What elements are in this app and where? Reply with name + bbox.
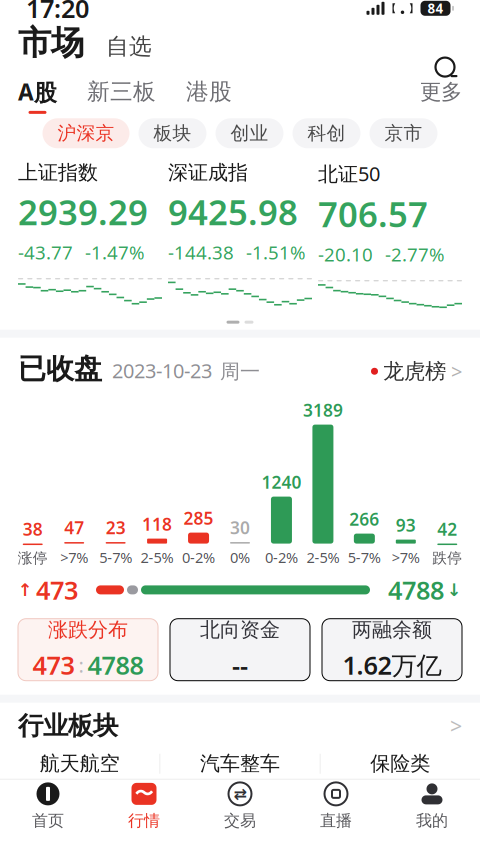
staticText: 5-7% <box>348 548 381 567</box>
button[interactable]: 创业 <box>215 118 283 148</box>
button[interactable]: 北证50 <box>318 160 462 315</box>
staticText: 2-5% <box>141 548 174 567</box>
staticText: 沪深京 <box>57 122 114 145</box>
button[interactable]: 直播 <box>288 780 384 832</box>
staticText: 30 <box>230 516 250 539</box>
button[interactable]: 搜索 <box>432 54 462 84</box>
button[interactable]: 港股 <box>156 78 232 113</box>
staticText: -1.47% <box>85 240 145 265</box>
button[interactable]: 京市 <box>369 118 437 148</box>
staticText: 4788 <box>87 648 143 682</box>
staticText: 5-7% <box>99 548 132 567</box>
staticText: -43.77 <box>18 240 73 265</box>
staticText: 2939.29 <box>18 189 148 235</box>
staticText: 0-2% <box>265 548 298 567</box>
staticText: 直播 <box>320 811 352 831</box>
button[interactable]: 新三板 <box>57 78 156 113</box>
staticText: 京市 <box>384 122 422 145</box>
staticText: ⇄ <box>233 785 246 803</box>
staticText: 跌停 <box>432 549 462 567</box>
button[interactable]: ⇄ <box>192 780 288 832</box>
button[interactable]: 龙虎榜 <box>371 358 462 385</box>
staticText: 706.57 <box>318 191 428 237</box>
button[interactable]: 深证成指 <box>168 160 312 313</box>
staticText: 市场 <box>18 22 84 63</box>
button[interactable]: 汽车整车 <box>160 751 320 776</box>
button[interactable]: 沪深京 <box>42 118 129 148</box>
staticText: >7% <box>60 548 88 567</box>
staticText: 已收盘 <box>18 352 102 386</box>
staticText: 2-5% <box>306 548 339 567</box>
button[interactable]: 北向资金 <box>170 619 310 681</box>
button[interactable]: 自选 <box>84 33 152 60</box>
button[interactable]: 首页 <box>0 780 96 832</box>
staticText: 473 <box>32 648 74 682</box>
staticText: 47 <box>64 516 84 539</box>
staticText: 两融余额 <box>352 618 432 642</box>
staticText: 科创 <box>307 122 345 145</box>
staticText: 0% <box>230 548 250 567</box>
staticText: 行业板块 <box>18 710 118 741</box>
staticText: 更多 <box>420 79 462 105</box>
staticText: 266 <box>349 508 379 531</box>
staticText: 93 <box>396 514 416 537</box>
staticText: > <box>450 711 462 740</box>
staticText: 汽车整车 <box>200 751 280 776</box>
button[interactable]: 航天航空 <box>0 751 159 776</box>
staticText: 17:20 <box>26 0 89 25</box>
staticText: -2.77% <box>385 242 445 267</box>
staticText: 我的 <box>416 811 448 831</box>
button[interactable]: 两融余额 <box>322 619 462 681</box>
staticText: 9425.98 <box>168 189 298 235</box>
staticText: -144.38 <box>168 240 234 265</box>
button[interactable]: 保险类 <box>321 751 480 776</box>
staticText: 42 <box>437 517 457 540</box>
staticText: 新三板 <box>87 78 156 106</box>
staticText: 473 <box>36 573 78 607</box>
staticText: 首页 <box>32 811 64 831</box>
staticText: 港股 <box>186 78 232 106</box>
staticText: 创业 <box>230 122 268 145</box>
staticText: 保险类 <box>370 751 430 776</box>
button[interactable]: 〜 <box>96 780 192 832</box>
staticText: >7% <box>392 548 420 567</box>
staticText: 龙虎榜 <box>383 358 446 384</box>
staticText: 涨跌分布 <box>48 618 128 642</box>
staticText: 23 <box>106 516 126 539</box>
staticText: A股 <box>18 77 57 107</box>
staticText: 交易 <box>224 811 256 831</box>
staticText: 北向资金 <box>200 618 280 642</box>
button[interactable]: A股 <box>18 77 57 114</box>
staticText: 涨停 <box>18 549 48 567</box>
staticText: 1240 <box>261 471 301 494</box>
staticText: 84 <box>427 0 443 17</box>
staticText: 1.62万亿 <box>342 648 441 682</box>
staticText: : <box>78 652 83 678</box>
staticText: -1.51% <box>246 240 306 265</box>
staticText: 航天航空 <box>40 751 120 776</box>
staticText: 0-2% <box>182 548 215 567</box>
staticText: 自选 <box>106 33 152 60</box>
button[interactable]: 科创 <box>292 118 360 148</box>
staticText: > <box>451 358 462 385</box>
button[interactable]: 我的 <box>384 780 480 832</box>
staticText: -20.10 <box>318 242 373 267</box>
button[interactable]: 上证指数 <box>18 160 162 313</box>
staticText: ↓ <box>447 580 462 600</box>
staticText: 深证成指 <box>168 160 248 185</box>
staticText: 4788 <box>388 573 444 607</box>
staticText: 3189 <box>303 399 343 422</box>
staticText: 〜 <box>134 782 153 805</box>
staticText: 板块 <box>153 122 191 145</box>
button[interactable]: 市场 <box>18 22 84 63</box>
staticText: 北证50 <box>318 160 380 187</box>
button[interactable]: 更多 <box>420 79 462 112</box>
button[interactable]: 涨跌分布 <box>18 619 158 681</box>
staticText: 2023-10-23 <box>112 357 212 384</box>
button[interactable]: 板块 <box>138 118 206 148</box>
staticText: 38 <box>23 517 43 540</box>
staticText: -- <box>232 648 248 682</box>
staticText: 行情 <box>128 811 160 831</box>
button[interactable]: 行业板块 <box>0 703 480 749</box>
staticText: 上证指数 <box>18 160 98 185</box>
